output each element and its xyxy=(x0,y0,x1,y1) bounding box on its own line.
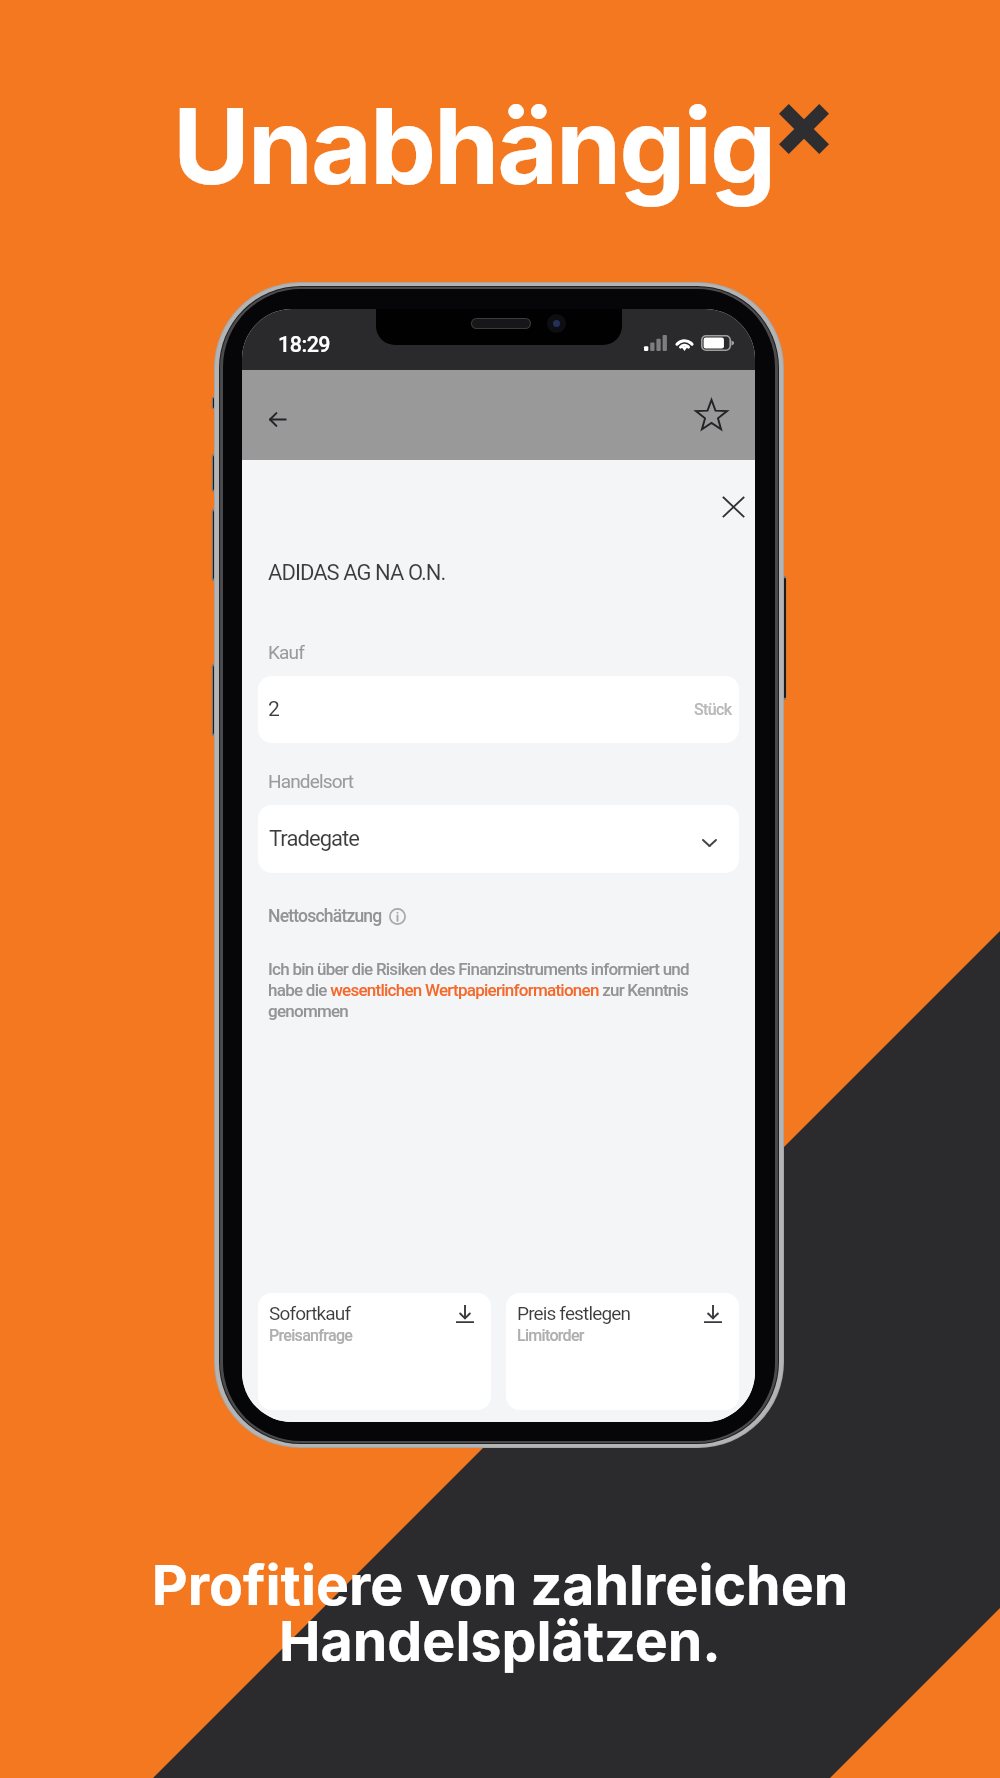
staticText: Preisanfrage xyxy=(269,1326,353,1345)
staticText: Nettoschätzung xyxy=(268,906,382,927)
button[interactable]: Favorite xyxy=(688,392,734,438)
staticText: ADIDAS AG NA O.N. xyxy=(268,560,446,586)
staticText: Unabhängig xyxy=(173,82,775,209)
staticText: Kauf xyxy=(268,641,304,663)
button[interactable]: Sofortkauf xyxy=(258,1293,491,1410)
staticText: Stück xyxy=(694,700,732,719)
button[interactable]: Tradegate xyxy=(258,805,739,873)
button[interactable]: 2 xyxy=(258,676,739,743)
staticText: Sofortkauf xyxy=(269,1302,351,1324)
staticText: 2 xyxy=(268,697,280,722)
staticText: Ich bin über die Risiken des Finanzinstr… xyxy=(268,959,708,1021)
staticText: 18:29 xyxy=(278,332,331,357)
button[interactable]: Preis festlegen xyxy=(506,1293,739,1410)
staticText: Handelsort xyxy=(268,770,354,792)
staticText: Profitiere von zahlreichen Handelsplätze… xyxy=(0,1551,1000,1674)
button[interactable]: Back xyxy=(255,396,301,442)
staticText: Preis festlegen xyxy=(517,1302,631,1324)
button[interactable]: Close xyxy=(710,484,755,530)
staticText: Tradegate xyxy=(269,826,360,852)
staticText: Limitorder xyxy=(517,1326,584,1345)
